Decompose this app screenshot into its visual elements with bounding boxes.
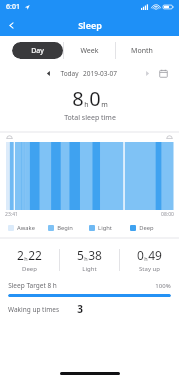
button[interactable]: Week xyxy=(64,42,115,59)
staticText: Day xyxy=(31,46,44,56)
button[interactable]: Previous day xyxy=(43,68,54,79)
staticText: h xyxy=(24,255,28,262)
staticText: 22 xyxy=(28,247,42,263)
staticText: 0 xyxy=(137,247,144,263)
button[interactable]: 0 xyxy=(120,247,179,273)
staticText: Sleep xyxy=(78,19,102,31)
button[interactable]: 5 xyxy=(60,247,119,273)
staticText: 0 xyxy=(89,85,101,112)
staticText: 2019-03-07 xyxy=(83,69,117,78)
staticText: Today xyxy=(60,69,79,78)
staticText: 6:01 xyxy=(6,2,20,12)
staticText: Month xyxy=(131,46,153,56)
staticText: 8 xyxy=(72,85,84,112)
button[interactable]: Month xyxy=(116,42,167,59)
button[interactable]: Next day xyxy=(142,68,153,79)
staticText: h xyxy=(144,255,148,262)
staticText: 49 xyxy=(148,247,162,263)
staticText: Week xyxy=(80,46,99,56)
staticText: Begin xyxy=(57,224,73,232)
staticText: Deep xyxy=(22,265,37,273)
staticText: 08:00 xyxy=(161,211,174,218)
staticText: 5 xyxy=(77,247,84,263)
button[interactable]: Day xyxy=(12,42,63,59)
staticText: h xyxy=(84,255,88,262)
staticText: Sleep Target 8 h xyxy=(8,281,57,290)
staticText: Stay up xyxy=(139,265,160,273)
staticText: Light xyxy=(82,265,97,273)
staticText: h xyxy=(84,100,89,110)
button[interactable]: 2 xyxy=(0,247,59,273)
staticText: Light xyxy=(98,224,112,232)
staticText: m xyxy=(101,100,108,110)
staticText: 2 xyxy=(17,247,24,263)
staticText: 23:41 xyxy=(5,211,18,218)
staticText: 38 xyxy=(88,247,102,263)
staticText: Deep xyxy=(139,224,154,232)
staticText: 100% xyxy=(155,282,171,290)
staticText: 3 xyxy=(77,302,83,316)
staticText: Awake xyxy=(17,224,35,232)
staticText: Waking up times xyxy=(8,305,59,314)
button[interactable]: Back xyxy=(0,14,22,36)
staticText: Total sleep time xyxy=(64,113,116,123)
button[interactable]: Pick date xyxy=(157,67,169,79)
